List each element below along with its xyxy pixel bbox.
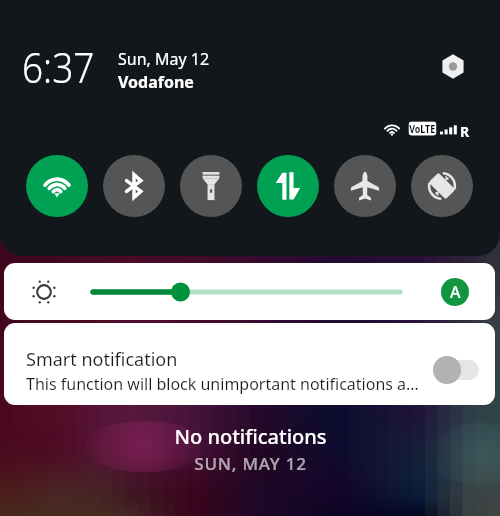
button[interactable]: Smart notification xyxy=(4,323,495,405)
staticText: This function will block unimportant not… xyxy=(26,373,419,395)
staticText: Smart notification xyxy=(26,347,178,372)
staticText: A xyxy=(450,281,461,303)
staticText: No notifications xyxy=(174,423,327,450)
button[interactable]: Airplane mode xyxy=(334,155,396,217)
staticText: 6:37 xyxy=(22,37,95,96)
button[interactable]: Mobile data xyxy=(257,155,319,217)
button[interactable]: Bluetooth xyxy=(103,155,165,217)
button[interactable]: Settings xyxy=(438,51,468,81)
staticText: SUN, MAY 12 xyxy=(194,452,307,475)
button[interactable]: Wi-Fi xyxy=(26,155,88,217)
staticText: Sun, May 12 xyxy=(118,48,210,70)
button[interactable]: A xyxy=(441,278,469,306)
button[interactable]: Auto-rotate xyxy=(411,155,473,217)
button[interactable]: Flashlight xyxy=(180,155,242,217)
staticText: Vodafone xyxy=(118,71,194,93)
staticText: R xyxy=(460,122,470,138)
staticText: VoLTE xyxy=(409,121,436,136)
button[interactable]: Toggle smart notification xyxy=(431,356,481,384)
